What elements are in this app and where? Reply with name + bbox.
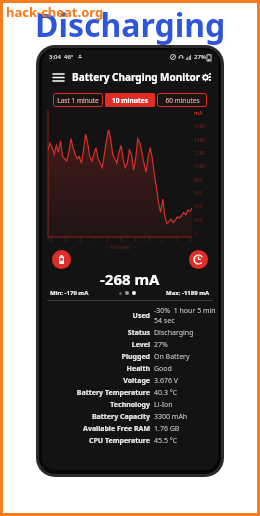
- staticText: 8: [79, 237, 82, 243]
- staticText: 1.76 GB: [154, 424, 180, 434]
- staticText: 10: [48, 237, 54, 243]
- staticText: 2: [161, 237, 164, 243]
- button[interactable]: Settings: [201, 69, 210, 85]
- staticText: Min: -170 mA: [50, 289, 89, 297]
- staticText: 0: [189, 237, 192, 243]
- button[interactable]: Status: [42, 328, 218, 338]
- staticText: Max: -1189 mA: [166, 289, 210, 297]
- staticText: Voltage: [42, 376, 150, 386]
- staticText: -30% 1 hour 5 min 54 sec: [154, 306, 218, 326]
- button[interactable]: Battery Capacity: [42, 412, 218, 422]
- staticText: Battery Capacity: [42, 412, 150, 422]
- staticText: hack-cheat.org: [6, 3, 104, 21]
- button[interactable]: Menu: [50, 69, 66, 85]
- staticText: 5: [120, 237, 123, 243]
- staticText: Last 1 minute: [57, 96, 99, 105]
- button[interactable]: 60 minutes: [157, 93, 207, 107]
- staticText: Good: [154, 364, 172, 374]
- staticText: Battery Charging Monitor: [72, 70, 201, 84]
- button[interactable]: History: [189, 250, 208, 269]
- staticText: 7: [92, 237, 95, 243]
- staticText: -- Minutes --: [105, 243, 136, 250]
- staticText: 1480: [194, 137, 206, 144]
- staticText: 27%: [154, 340, 168, 350]
- staticText: 800: [194, 177, 203, 184]
- staticText: Health: [42, 364, 150, 374]
- staticText: Discharging: [35, 3, 226, 47]
- staticText: CPU Temperature: [42, 436, 150, 446]
- staticText: 40.3 °C: [154, 388, 178, 398]
- staticText: Li-Ion: [154, 400, 173, 410]
- staticText: 600: [194, 190, 203, 197]
- staticText: 1: [175, 237, 178, 243]
- staticText: 10 minutes: [112, 96, 148, 105]
- staticText: Status: [42, 328, 150, 338]
- button[interactable]: Health: [42, 364, 218, 374]
- staticText: Battery Temperature: [42, 388, 150, 398]
- button[interactable]: Available Free RAM: [42, 424, 218, 434]
- button[interactable]: CPU Temperature: [42, 436, 218, 446]
- staticText: Plugged: [42, 352, 150, 362]
- button[interactable]: Level: [42, 340, 218, 350]
- staticText: 0: [194, 230, 197, 237]
- staticText: 60 minutes: [165, 96, 200, 105]
- button[interactable]: Technology: [42, 400, 218, 410]
- button[interactable]: Battery Temperature: [42, 388, 218, 398]
- button[interactable]: Battery: [52, 250, 71, 269]
- staticText: On Battery: [154, 352, 190, 362]
- staticText: Technology: [42, 400, 150, 410]
- staticText: Used: [42, 311, 150, 321]
- staticText: 45.5 °C: [154, 436, 178, 446]
- staticText: 1680: [194, 123, 206, 130]
- staticText: 1280: [194, 150, 206, 157]
- button[interactable]: Plugged: [42, 352, 218, 362]
- button[interactable]: 10 minutes: [105, 93, 155, 107]
- button[interactable]: Last 1 minute: [53, 93, 103, 107]
- staticText: 4: [134, 237, 137, 243]
- staticText: 9: [65, 237, 68, 243]
- staticText: 3300 mAh: [154, 412, 188, 422]
- staticText: Level: [42, 340, 150, 350]
- staticText: -268 mA: [100, 269, 160, 289]
- staticText: 3.676 V: [154, 376, 178, 386]
- staticText: 1080: [194, 163, 206, 170]
- staticText: 6: [106, 237, 109, 243]
- staticText: Available Free RAM: [42, 424, 150, 434]
- staticText: Discharging: [154, 328, 194, 338]
- staticText: 27%: [194, 53, 206, 61]
- staticText: 46°: [64, 53, 74, 61]
- staticText: 400: [194, 203, 203, 210]
- button[interactable]: Used: [42, 306, 218, 326]
- staticText: 3:04: [49, 53, 61, 61]
- staticText: mA: [194, 110, 203, 117]
- staticText: 3: [148, 237, 151, 243]
- staticText: 200: [194, 217, 203, 224]
- button[interactable]: Voltage: [42, 376, 218, 386]
